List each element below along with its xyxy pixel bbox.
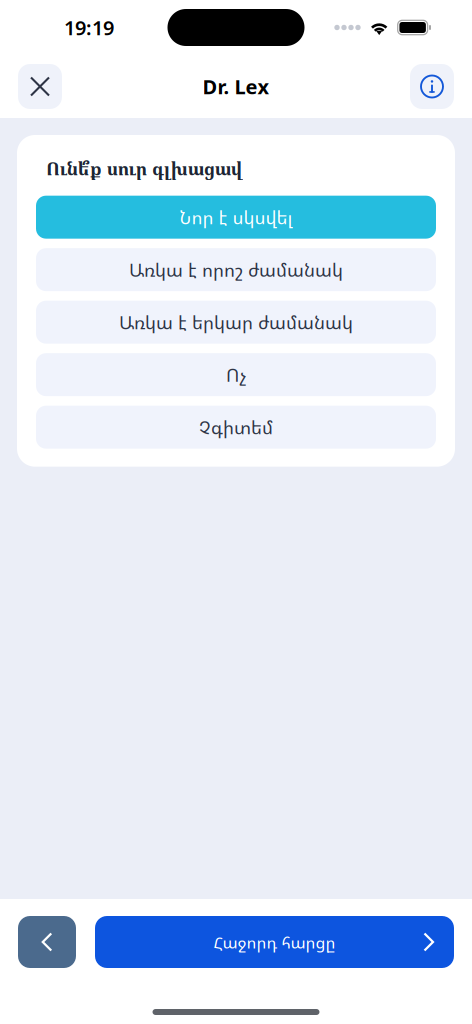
button[interactable]: Չգիտեմ xyxy=(36,406,436,449)
staticText: Հաջորդ հարցը xyxy=(213,931,335,953)
staticText: Չգիտեմ xyxy=(199,415,273,440)
button[interactable]: Առկա է որոշ ժամանակ xyxy=(36,248,436,291)
button[interactable]: Առկա է երկար ժամանակ xyxy=(36,301,436,344)
staticText: Նոր է սկսվել xyxy=(179,205,292,230)
staticText: Առկա է երկար ժամանակ xyxy=(119,310,353,335)
staticText: Ոչ xyxy=(226,362,246,387)
button[interactable]: Information xyxy=(410,64,454,109)
staticText: 19:19 xyxy=(64,14,114,41)
button[interactable]: Back xyxy=(18,916,76,968)
staticText: Առկա է որոշ ժամանակ xyxy=(129,257,343,282)
button[interactable]: Նոր է սկսվել xyxy=(36,196,436,239)
button[interactable]: Ոչ xyxy=(36,353,436,396)
button[interactable]: Հաջորդ հարցը xyxy=(95,916,454,968)
staticText: Dr. Lex xyxy=(202,73,269,100)
staticText: Ունե՞ք սուր գլխացավ xyxy=(46,156,243,181)
button[interactable]: Close xyxy=(18,64,62,109)
